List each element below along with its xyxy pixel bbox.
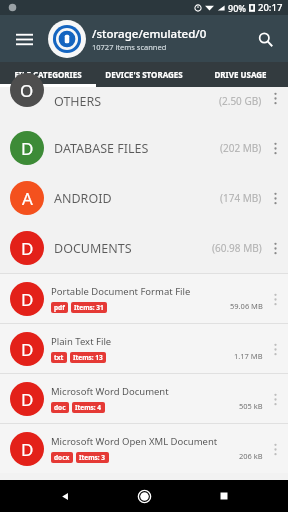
staticText: OTHERS bbox=[54, 93, 102, 110]
staticText: O bbox=[20, 79, 34, 102]
staticText: DATABASE FILES bbox=[54, 140, 149, 157]
staticText: 59.06 MB bbox=[230, 301, 263, 311]
button[interactable]: DRIVE USAGE bbox=[192, 62, 288, 87]
staticText: (202 MB) bbox=[220, 141, 262, 155]
staticText: A bbox=[22, 187, 33, 210]
button[interactable]: Menu bbox=[8, 23, 40, 55]
button[interactable]: More options bbox=[266, 290, 284, 308]
staticText: Microsoft Word Document bbox=[51, 385, 169, 398]
button[interactable]: D bbox=[0, 424, 288, 473]
staticText: Items: 13 bbox=[73, 353, 103, 362]
button[interactable]: D bbox=[0, 374, 288, 423]
staticText: Items: 4 bbox=[75, 403, 102, 412]
button[interactable]: D bbox=[0, 123, 288, 173]
staticText: 20:17 bbox=[258, 1, 283, 14]
button[interactable]: D bbox=[0, 274, 288, 323]
staticText: (174 MB) bbox=[220, 191, 262, 205]
button[interactable]: Home bbox=[129, 481, 159, 511]
button[interactable]: FILE CATEGORIES bbox=[0, 62, 96, 87]
staticText: doc bbox=[54, 403, 66, 412]
staticText: 206 kB bbox=[239, 451, 263, 461]
staticText: (2.50 GB) bbox=[219, 94, 262, 108]
staticText: ANDROID bbox=[54, 190, 112, 207]
button[interactable]: More options bbox=[266, 239, 284, 257]
staticText: docx bbox=[54, 453, 70, 462]
staticText: (60.98 MB) bbox=[212, 241, 262, 255]
button[interactable]: Back bbox=[50, 481, 80, 511]
staticText: 10727 items scanned bbox=[92, 42, 167, 52]
button[interactable]: D bbox=[0, 223, 288, 273]
button[interactable]: DEVICE'S STORAGES bbox=[96, 62, 192, 87]
button[interactable]: More options bbox=[266, 139, 284, 157]
button[interactable]: More options bbox=[266, 440, 284, 458]
button[interactable]: O bbox=[0, 87, 288, 123]
button[interactable]: /storage/emulated/0 bbox=[48, 20, 207, 58]
button[interactable]: More options bbox=[266, 89, 284, 107]
staticText: 1.17 MB bbox=[234, 351, 263, 361]
button[interactable]: Search bbox=[250, 24, 280, 54]
staticText: Microsoft Word Open XML Document bbox=[51, 435, 218, 448]
staticText: 90% bbox=[228, 2, 246, 14]
button[interactable]: D bbox=[0, 324, 288, 373]
staticText: DOCUMENTS bbox=[54, 240, 132, 257]
staticText: Items: 3 bbox=[79, 453, 106, 462]
staticText: Plain Text File bbox=[51, 335, 112, 348]
staticText: pdf bbox=[54, 303, 65, 312]
staticText: Portable Document Format File bbox=[51, 285, 191, 298]
staticText: D bbox=[21, 237, 34, 260]
staticText: /storage/emulated/0 bbox=[92, 26, 207, 42]
button[interactable]: More options bbox=[266, 189, 284, 207]
staticText: FILE CATEGORIES bbox=[14, 69, 82, 80]
staticText: txt bbox=[54, 353, 64, 362]
button[interactable]: More options bbox=[266, 390, 284, 408]
staticText: DEVICE'S STORAGES bbox=[105, 69, 183, 80]
staticText: D bbox=[21, 438, 34, 461]
button[interactable]: A bbox=[0, 173, 288, 223]
staticText: D bbox=[21, 338, 34, 361]
staticText: D bbox=[21, 288, 34, 311]
button[interactable]: Recent apps bbox=[209, 481, 239, 511]
staticText: D bbox=[21, 137, 34, 160]
button[interactable]: More options bbox=[266, 340, 284, 358]
staticText: D bbox=[21, 388, 34, 411]
staticText: DRIVE USAGE bbox=[214, 69, 267, 80]
staticText: Items: 31 bbox=[74, 303, 104, 312]
staticText: 505 kB bbox=[239, 401, 263, 411]
